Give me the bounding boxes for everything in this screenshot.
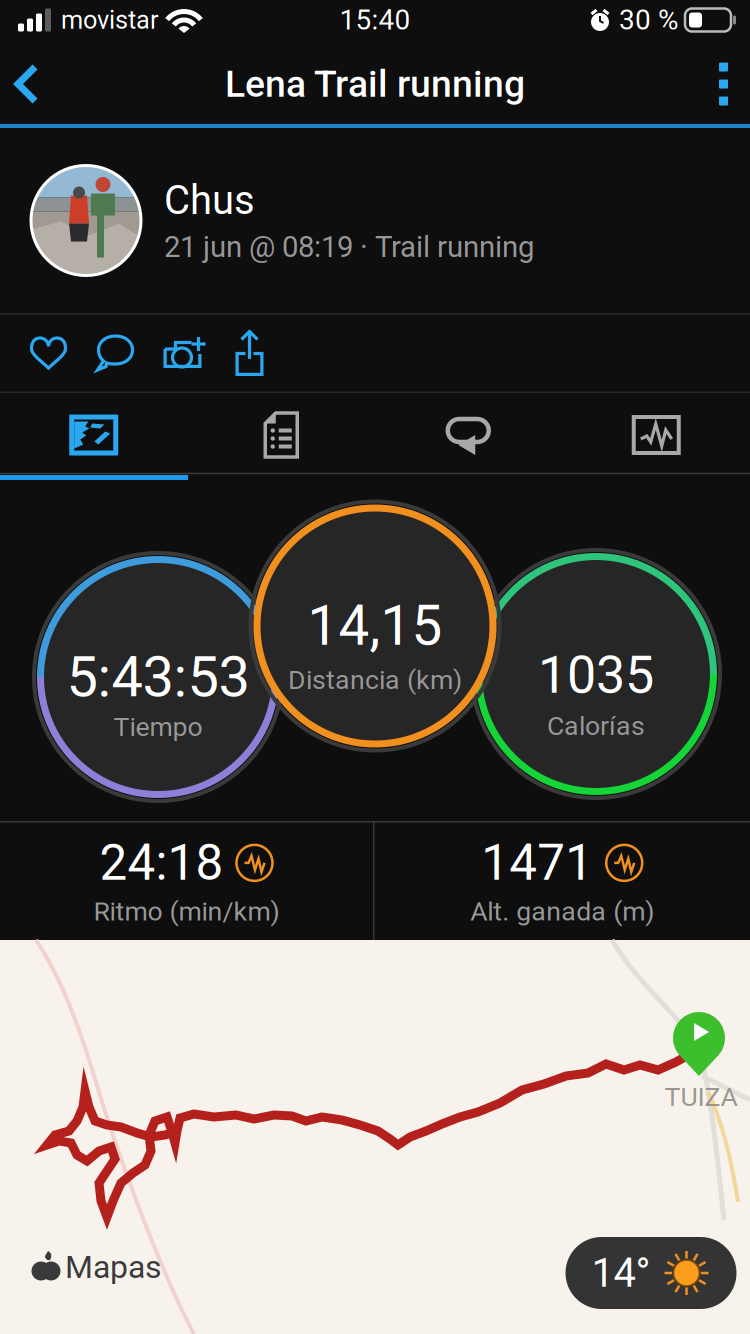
- button[interactable]: Graphs: [562, 395, 750, 475]
- button[interactable]: Map: [0, 395, 187, 475]
- staticText: 5:43:53: [66, 644, 249, 710]
- button[interactable]: Back: [0, 44, 63, 124]
- staticText: TUIZA: [664, 1081, 737, 1113]
- staticText: Mapas: [65, 1248, 162, 1286]
- staticText: 30 %: [619, 4, 679, 36]
- staticText: Tiempo: [113, 711, 202, 743]
- button[interactable]: Add photo: [149, 313, 216, 393]
- button[interactable]: Share: [216, 313, 283, 393]
- staticText: 15:40: [339, 4, 410, 36]
- staticText: 1035: [538, 644, 654, 705]
- staticText: 14,15: [307, 594, 442, 658]
- staticText: 1471: [481, 834, 593, 892]
- staticText: Alt. ganada (m): [470, 896, 654, 927]
- staticText: 21 jun @ 08:19 · Trail running: [164, 230, 534, 264]
- button[interactable]: Laps: [375, 395, 562, 475]
- button[interactable]: Like: [15, 313, 82, 393]
- staticText: 24:18: [99, 834, 223, 892]
- staticText: movistar: [61, 5, 159, 35]
- staticText: Ritmo (min/km): [93, 896, 279, 927]
- staticText: Chus: [164, 177, 255, 224]
- staticText: Calorías: [547, 710, 645, 742]
- staticText: Distancia (km): [288, 664, 462, 696]
- staticText: Lena Trail running: [225, 62, 525, 106]
- button[interactable]: Comment: [82, 313, 149, 393]
- button[interactable]: Details: [187, 395, 375, 475]
- button[interactable]: More options: [693, 42, 750, 125]
- staticText: 14°: [591, 1250, 650, 1296]
